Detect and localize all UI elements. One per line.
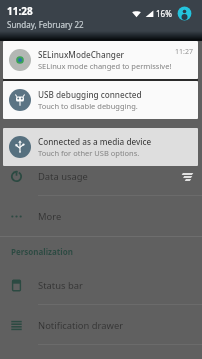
staticText: Sunday, February 22 — [7, 19, 84, 30]
button[interactable]: Sort — [180, 169, 194, 183]
button[interactable]: USB debugging connected — [3, 81, 198, 119]
staticText: SELinuxModeChanger — [38, 49, 125, 60]
button[interactable]: Status bar — [0, 265, 202, 305]
staticText: Data usage — [38, 170, 88, 183]
staticText: Connected as a media device — [38, 136, 152, 147]
button[interactable]: Connected as a media device — [3, 128, 198, 166]
staticText: Touch to disable debugging. — [38, 101, 138, 111]
staticText: More — [38, 210, 62, 223]
staticText: SELinux mode changed to permissive! — [38, 61, 172, 71]
button[interactable]: SELinuxModeChanger — [3, 41, 198, 79]
button[interactable]: Current user profile — [177, 6, 192, 21]
staticText: Touch for other USB options. — [38, 148, 140, 158]
staticText: 11:27 — [175, 47, 193, 57]
staticText: 16% — [156, 8, 172, 19]
staticText: Status bar — [38, 279, 83, 292]
staticText: Notification drawer — [38, 319, 124, 332]
button[interactable]: Notification drawer — [0, 305, 202, 345]
button[interactable]: Data usage — [0, 156, 202, 196]
staticText: Personalization — [11, 246, 73, 257]
staticText: 11:28 — [7, 4, 33, 18]
staticText: USB debugging connected — [38, 89, 142, 100]
